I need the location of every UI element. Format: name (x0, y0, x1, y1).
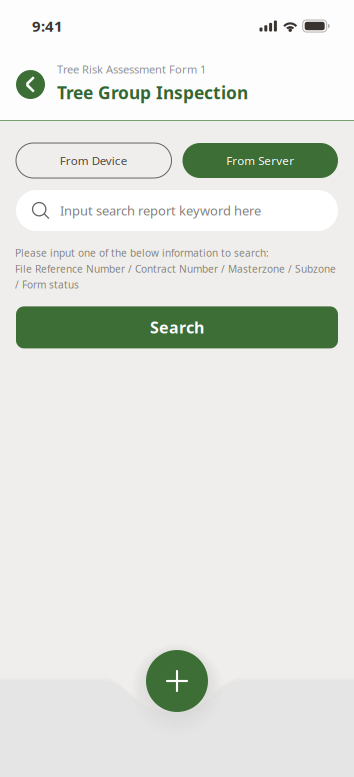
staticText: Tree Risk Assessment Form 1 (57, 62, 206, 77)
staticText: Search (150, 316, 204, 338)
staticText: From Server (226, 153, 294, 168)
staticText: Input search report keyword here (60, 202, 261, 219)
button[interactable]: From Server (182, 143, 338, 178)
staticText: File Reference Number / Contract Number … (15, 262, 336, 276)
staticText: From Device (60, 153, 128, 168)
button[interactable]: From Device (16, 143, 171, 178)
button[interactable]: Add (146, 650, 208, 712)
button[interactable]: Search (16, 306, 338, 348)
button[interactable]: Back (12, 66, 49, 103)
staticText: 9:41 (32, 16, 63, 36)
staticText: Please input one of the below informatio… (15, 246, 269, 260)
staticText: Tree Group Inspection (57, 81, 248, 104)
staticText: / Form status (15, 278, 79, 291)
